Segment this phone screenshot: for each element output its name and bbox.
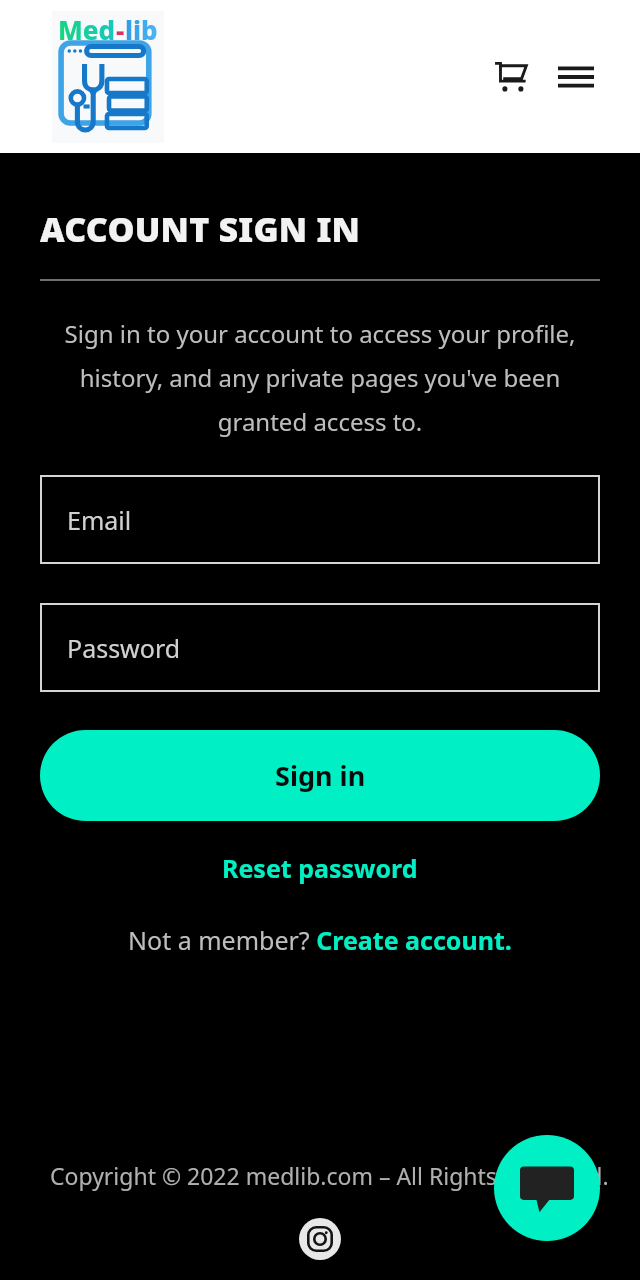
button[interactable]: Menu: [548, 49, 604, 105]
staticText: ACCOUNT SIGN IN: [40, 206, 361, 252]
button[interactable]: Email: [40, 475, 600, 564]
button[interactable]: Instagram: [299, 1218, 341, 1260]
button[interactable]: Password: [40, 603, 600, 692]
staticText: Email: [67, 503, 132, 537]
staticText: Password: [67, 631, 181, 665]
button[interactable]: Not a member? Create account.: [40, 917, 600, 963]
button[interactable]: Med-lib home: [52, 11, 164, 143]
button[interactable]: Open chat: [494, 1135, 600, 1241]
staticText: -: [116, 12, 125, 47]
staticText: Not a member? Create account.: [128, 923, 512, 957]
staticText: lib: [125, 12, 158, 47]
staticText: Copyright © 2022 medlib.com – All Rights…: [50, 1160, 609, 1191]
staticText: Sign in: [275, 757, 366, 794]
button[interactable]: Reset password: [40, 843, 600, 893]
staticText: Reset password: [222, 851, 418, 885]
button[interactable]: Sign in: [40, 730, 600, 821]
staticText: Sign in to your account to access your p…: [40, 317, 600, 438]
staticText: Med: [58, 12, 116, 47]
button[interactable]: Shopping cart: [482, 49, 538, 105]
